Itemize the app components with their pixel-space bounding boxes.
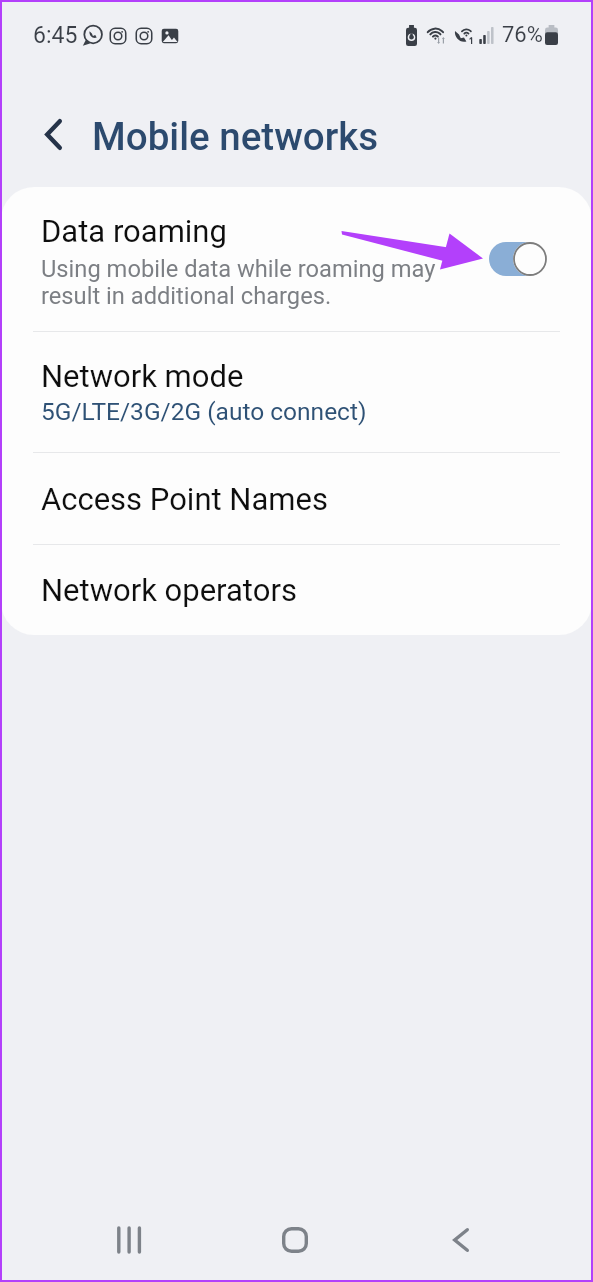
staticText: Data roaming <box>41 213 227 249</box>
staticText: Using mobile data while roaming may resu… <box>41 255 436 309</box>
button[interactable]: Data roaming toggle <box>489 242 547 276</box>
button[interactable]: Access Point Names <box>1 453 592 544</box>
button[interactable]: Recents <box>73 1198 185 1282</box>
button[interactable]: Back <box>405 1198 517 1282</box>
button[interactable]: Data roaming <box>1 187 592 331</box>
staticText: 5G/LTE/3G/2G (auto connect) <box>41 396 367 426</box>
staticText: Mobile networks <box>92 114 379 159</box>
button[interactable]: Home <box>239 1198 351 1282</box>
staticText: Network operators <box>41 572 297 608</box>
staticText: 6:45 <box>33 22 78 49</box>
staticText: Access Point Names <box>41 481 328 517</box>
staticText: 76% <box>502 22 543 48</box>
button[interactable]: Network mode <box>1 332 592 452</box>
button[interactable]: Network operators <box>1 545 592 635</box>
staticText: Network mode <box>41 358 244 394</box>
button[interactable]: Back <box>22 110 74 162</box>
